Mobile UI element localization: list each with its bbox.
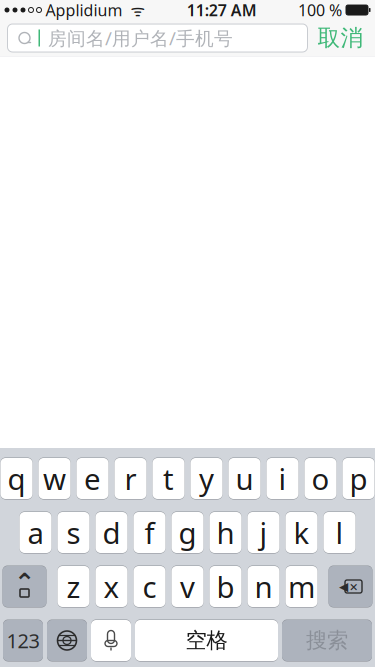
staticText: ◀ xyxy=(339,580,348,593)
button[interactable]: Shift xyxy=(2,565,46,607)
staticText: p xyxy=(349,459,367,498)
button[interactable]: 房间名/用户名/手机号 xyxy=(7,24,307,52)
staticText: u xyxy=(235,459,253,498)
staticText: k xyxy=(293,513,309,552)
button[interactable]: n xyxy=(247,565,279,607)
staticText: b xyxy=(216,567,234,606)
staticText: × xyxy=(349,577,357,596)
button[interactable]: Dictation xyxy=(91,619,131,661)
button[interactable]: f xyxy=(133,511,165,553)
button[interactable]: z xyxy=(57,565,89,607)
button[interactable]: a xyxy=(19,511,51,553)
button[interactable]: g xyxy=(171,511,203,553)
staticText: 123 xyxy=(6,627,39,654)
staticText: 11:27 AM xyxy=(187,0,257,21)
button[interactable]: q xyxy=(0,457,32,499)
staticText: 空格 xyxy=(185,627,227,654)
staticText: Applidium xyxy=(41,0,122,21)
staticText: a xyxy=(27,513,43,552)
staticText: m xyxy=(288,567,315,606)
button[interactable]: t xyxy=(152,457,184,499)
staticText: c xyxy=(142,567,156,606)
staticText: 取消 xyxy=(317,24,363,52)
button[interactable]: p xyxy=(342,457,374,499)
button[interactable]: s xyxy=(57,511,89,553)
staticText: 搜索 xyxy=(306,627,348,654)
staticText: s xyxy=(66,513,80,552)
button[interactable]: 123 xyxy=(3,619,43,661)
staticText: n xyxy=(254,567,272,606)
staticText: z xyxy=(66,567,80,606)
button[interactable]: c xyxy=(133,565,165,607)
staticText: h xyxy=(216,513,234,552)
staticText: v xyxy=(180,567,195,606)
staticText: l xyxy=(335,513,343,552)
button[interactable]: v xyxy=(171,565,203,607)
button[interactable]: l xyxy=(323,511,355,553)
staticText: l xyxy=(335,513,343,552)
button[interactable]: 搜索 xyxy=(282,619,372,661)
staticText: t xyxy=(163,459,174,498)
staticText: g xyxy=(178,513,196,552)
staticText: v xyxy=(180,567,195,606)
button[interactable]: m xyxy=(285,565,317,607)
staticText: q xyxy=(7,459,25,498)
staticText: j xyxy=(259,513,267,552)
staticText: o xyxy=(311,459,329,498)
staticText: w xyxy=(43,459,66,498)
staticText: q xyxy=(7,459,25,498)
staticText: x xyxy=(103,567,119,606)
staticText: z xyxy=(66,567,80,606)
staticText: e xyxy=(84,459,101,498)
button[interactable]: o xyxy=(304,457,336,499)
button[interactable]: Next keyboard xyxy=(47,619,87,661)
button[interactable]: y xyxy=(190,457,222,499)
staticText: 100 % xyxy=(298,0,342,21)
button[interactable]: u xyxy=(228,457,260,499)
staticText: r xyxy=(124,459,136,498)
staticText: f xyxy=(144,513,154,552)
button[interactable]: Delete xyxy=(328,565,372,607)
button[interactable]: i xyxy=(266,457,298,499)
button[interactable]: b xyxy=(209,565,241,607)
staticText: ᯤ xyxy=(122,0,145,21)
button[interactable]: x xyxy=(95,565,127,607)
staticText: b xyxy=(216,567,234,606)
staticText: e xyxy=(84,459,101,498)
staticText: h xyxy=(216,513,234,552)
button[interactable]: r xyxy=(114,457,146,499)
button[interactable]: e xyxy=(76,457,108,499)
button[interactable]: d xyxy=(95,511,127,553)
staticText: 房间名/用户名/手机号 xyxy=(48,26,233,50)
staticText: r xyxy=(124,459,136,498)
staticText: u xyxy=(235,459,253,498)
staticText: m xyxy=(288,567,315,606)
staticText: j xyxy=(259,513,267,552)
button[interactable]: 空格 xyxy=(135,619,278,661)
staticText: t xyxy=(163,459,174,498)
staticText: d xyxy=(102,513,120,552)
staticText: 123 xyxy=(6,627,39,654)
staticText: s xyxy=(66,513,80,552)
staticText: w xyxy=(43,459,66,498)
button[interactable]: k xyxy=(285,511,317,553)
staticText: y xyxy=(199,459,214,498)
staticText: ⌃ xyxy=(14,568,35,597)
button[interactable]: w xyxy=(38,457,70,499)
staticText: n xyxy=(254,567,272,606)
staticText: c xyxy=(142,567,156,606)
staticText: k xyxy=(293,513,309,552)
button[interactable]: j xyxy=(247,511,279,553)
staticText: x xyxy=(103,567,119,606)
button[interactable]: 取消 xyxy=(307,21,373,55)
staticText: f xyxy=(144,513,154,552)
button[interactable]: h xyxy=(209,511,241,553)
staticText: 搜索 xyxy=(306,627,348,654)
staticText: i xyxy=(278,459,286,498)
staticText: d xyxy=(102,513,120,552)
staticText: y xyxy=(199,459,214,498)
staticText: p xyxy=(349,459,367,498)
staticText: o xyxy=(311,459,329,498)
staticText: g xyxy=(178,513,196,552)
staticText: i xyxy=(278,459,286,498)
